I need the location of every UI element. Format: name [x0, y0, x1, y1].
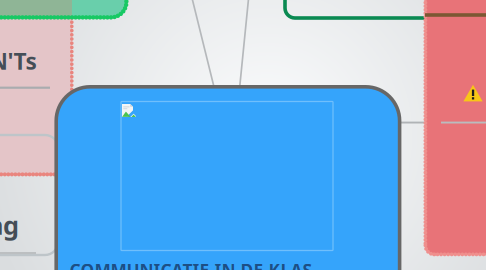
button[interactable]: N'Ts: [0, 0, 486, 270]
staticText: COMMUNICATIE IN DE KLAS: [69, 258, 312, 270]
button[interactable]: ng: [0, 0, 486, 270]
staticText: N'Ts: [0, 46, 36, 76]
staticText: ng: [0, 208, 19, 242]
